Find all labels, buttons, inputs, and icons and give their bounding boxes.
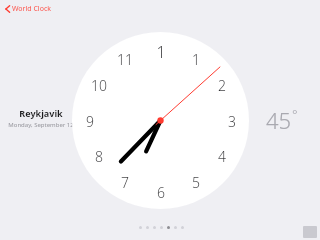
button[interactable]: Clock [72, 32, 249, 209]
staticText: World Clock [12, 4, 51, 14]
button[interactable]: World Clock [3, 2, 53, 16]
staticText: 5 [192, 173, 200, 191]
staticText: 45 [266, 105, 292, 135]
staticText: 1 [192, 50, 200, 68]
staticText: 4 [218, 147, 226, 165]
staticText: Monday, September 12 [8, 121, 74, 129]
button[interactable]: Reykjavik [2, 107, 80, 129]
staticText: 6 [157, 183, 165, 201]
staticText: 3 [228, 112, 236, 130]
staticText: Reykjavik [19, 107, 63, 119]
staticText: 2 [218, 76, 226, 94]
staticText: 7 [121, 173, 129, 191]
staticText: ° [292, 105, 298, 123]
staticText: 11 [117, 50, 133, 68]
staticText: 8 [95, 147, 103, 165]
staticText: 12 [153, 41, 169, 59]
staticText: 10 [91, 76, 107, 94]
staticText: 9 [86, 112, 94, 130]
